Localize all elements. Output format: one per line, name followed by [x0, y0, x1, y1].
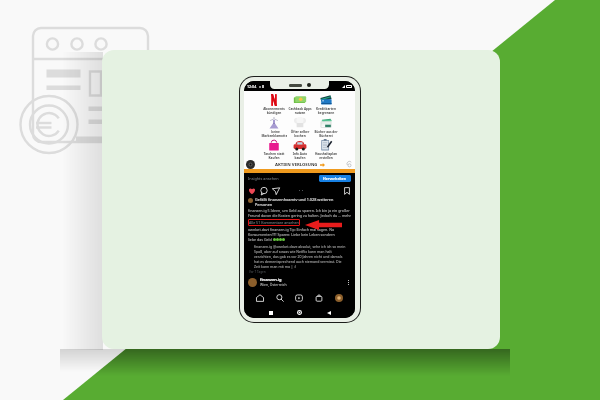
- button[interactable]: More options: [346, 278, 351, 287]
- button[interactable]: keine Markenklamotten: [261, 116, 287, 138]
- button[interactable]: Comment: [260, 187, 268, 195]
- staticText: finanzen.ig @ownbet.dave absolut, sehe i…: [254, 244, 346, 269]
- button[interactable]: Info Auto kaufen: [287, 138, 313, 160]
- button[interactable]: Öfter selber kochen: [287, 116, 313, 138]
- button[interactable]: Profile: [335, 294, 343, 302]
- staticText: Cashback Apps nutzen: [287, 107, 313, 115]
- staticText: keine Markenklamotten: [261, 130, 287, 138]
- button[interactable]: Reels: [295, 294, 303, 302]
- staticText: Insights ansehen: [248, 176, 279, 181]
- staticText: Abonnements kündigen: [261, 107, 287, 115]
- staticText: finanzen.ig 5 Ideen, um Geld zu sparen. …: [248, 208, 351, 218]
- button[interactable]: Back: [327, 311, 331, 315]
- staticText: Vor 7 Tagen: [249, 270, 266, 274]
- button[interactable]: Hervorheben: [319, 175, 351, 182]
- staticText: Haushaltsplan erstellen: [313, 152, 339, 160]
- staticText: 12:04: [247, 84, 257, 89]
- staticText: Bücher aus der Bücherei: [313, 130, 339, 138]
- staticText: Alle 51 Kommentare ansehen: [249, 220, 299, 225]
- staticText: Öfter selber kochen: [287, 130, 313, 138]
- button[interactable]: Home: [256, 294, 264, 302]
- staticText: ownbet.davt finanzen.ig Tip: Einfach mal…: [248, 227, 351, 237]
- button[interactable]: Search: [276, 294, 284, 302]
- button[interactable]: Share: [272, 187, 280, 195]
- button[interactable]: Abonnements kündigen: [261, 93, 287, 115]
- button[interactable]: Taschen statt Kaufen: [261, 138, 287, 160]
- staticText: Gefällt finanzenhoamtv und 1.028 weitere…: [255, 197, 351, 207]
- staticText: Wien, Österreich: [260, 282, 287, 287]
- button[interactable]: Home button: [297, 310, 302, 315]
- button[interactable]: Cashback Apps nutzen: [287, 93, 313, 115]
- staticText: AKTIEN VERLOSUNG: [275, 162, 318, 168]
- staticText: finanzen.ig: [260, 277, 282, 282]
- staticText: Taschen statt Kaufen: [261, 152, 287, 160]
- button[interactable]: Save: [343, 187, 351, 195]
- staticText: liebe das Geld: [248, 237, 273, 242]
- button[interactable]: Like: [248, 187, 256, 195]
- staticText: Kreditkarten begrenzen: [313, 107, 339, 115]
- button[interactable]: Kreditkarten begrenzen: [313, 93, 339, 115]
- button[interactable]: Shop: [315, 294, 323, 302]
- button[interactable]: Haushaltsplan erstellen: [313, 138, 339, 160]
- staticText: Hervorheben: [323, 176, 347, 181]
- button[interactable]: Alle 51 Kommentare ansehen: [248, 219, 300, 226]
- staticText: Info Auto kaufen: [287, 152, 313, 160]
- button[interactable]: Bücher aus der Bücherei: [313, 116, 339, 138]
